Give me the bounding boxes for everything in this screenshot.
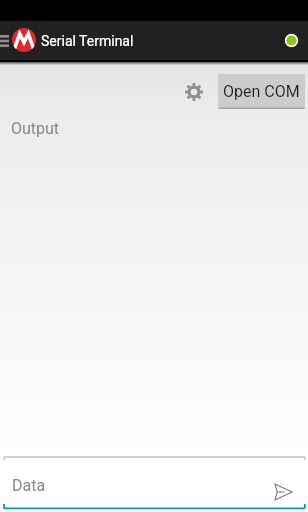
staticText: Data bbox=[12, 476, 46, 495]
button[interactable]: Connection status bbox=[274, 21, 308, 60]
button[interactable]: Send bbox=[269, 478, 297, 506]
staticText: Output bbox=[11, 119, 60, 138]
button[interactable]: Settings bbox=[179, 77, 209, 107]
staticText: Open COM bbox=[223, 82, 300, 101]
staticText: Serial Terminal bbox=[41, 33, 134, 49]
button[interactable]: Open COM bbox=[218, 74, 305, 109]
button[interactable]: Menu bbox=[0, 21, 12, 60]
